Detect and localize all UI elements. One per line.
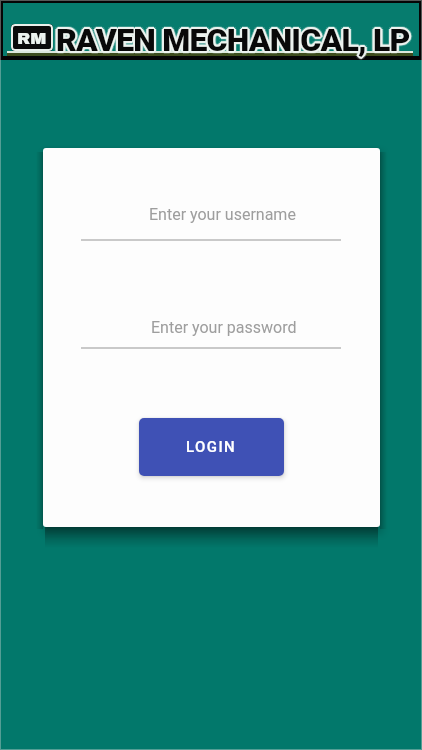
staticText: RAVEN MECHANICAL, LP [54,23,408,61]
staticText: RAVEN MECHANICAL, LP [58,23,412,61]
button[interactable]: RM [11,24,53,51]
staticText: RAVEN MECHANICAL, LP [56,18,410,56]
staticText: RAVEN MECHANICAL, LP [56,21,410,59]
staticText: RAVEN MECHANICAL, LP [54,21,408,59]
staticText: RAVEN MECHANICAL, LP [57,20,411,58]
staticText: RAVEN MECHANICAL, LP [58,19,412,57]
staticText: RAVEN MECHANICAL, LP [55,20,409,58]
staticText: RAVEN MECHANICAL, LP [56,19,410,57]
staticText: RAVEN MECHANICAL, LP [56,24,410,62]
button[interactable]: Enter your password [81,305,341,349]
staticText: RAVEN MECHANICAL, LP [57,22,411,60]
staticText: RM [17,29,47,47]
staticText: RAVEN MECHANICAL, LP [54,19,408,57]
staticText: RAVEN MECHANICAL, LP [58,21,412,59]
button[interactable]: Enter your username [81,197,341,241]
staticText: RAVEN MECHANICAL, LP [56,23,410,61]
staticText: Enter your password [151,318,297,337]
staticText: RAVEN MECHANICAL, LP [59,21,413,59]
staticText: LOGIN [186,438,237,456]
staticText: RAVEN MECHANICAL, LP [53,21,407,59]
staticText: RAVEN MECHANICAL, LP [55,22,409,60]
button[interactable]: LOGIN [139,418,284,476]
staticText: Enter your username [149,205,296,224]
